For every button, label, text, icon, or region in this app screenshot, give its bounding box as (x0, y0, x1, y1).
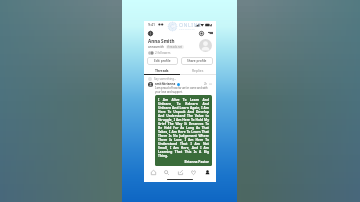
staticText: I am proud of how far we've come and wit… (155, 86, 212, 93)
button[interactable]: Home (149, 168, 158, 177)
staticText: Threads (155, 68, 169, 73)
button[interactable]: New thread (198, 30, 204, 36)
button[interactable]: Menu (207, 30, 213, 36)
button[interactable]: Globe (147, 30, 153, 36)
staticText: Share profile (187, 59, 207, 63)
staticText: Say something... (154, 77, 177, 81)
button[interactable]: Search (162, 168, 171, 177)
staticText: Brianna Pastor (158, 159, 209, 163)
button[interactable]: Profile (203, 168, 212, 177)
staticText: Anna Smith (148, 38, 175, 44)
staticText: 2h (204, 82, 208, 86)
staticText: Replies (192, 68, 204, 73)
staticText: threads.net (167, 45, 183, 49)
staticText: Edit profile (154, 59, 171, 63)
button[interactable]: Edit profile (147, 57, 178, 65)
button[interactable]: Replies (180, 67, 216, 74)
staticText: I Am Alive To Learn And Unlearn, To Rele… (158, 98, 209, 158)
button[interactable]: Activity (189, 168, 198, 177)
staticText: 9:41 (148, 22, 156, 27)
staticText: smithbrianna (155, 82, 176, 86)
staticText: 2 followers (155, 51, 171, 55)
button[interactable]: Share profile (181, 57, 213, 65)
staticText: annasmith (148, 45, 164, 49)
staticText: ONLINE (179, 21, 202, 28)
button[interactable]: Compose (176, 168, 185, 177)
staticText: CONVERTER (179, 28, 196, 31)
button[interactable]: Threads (144, 67, 180, 74)
